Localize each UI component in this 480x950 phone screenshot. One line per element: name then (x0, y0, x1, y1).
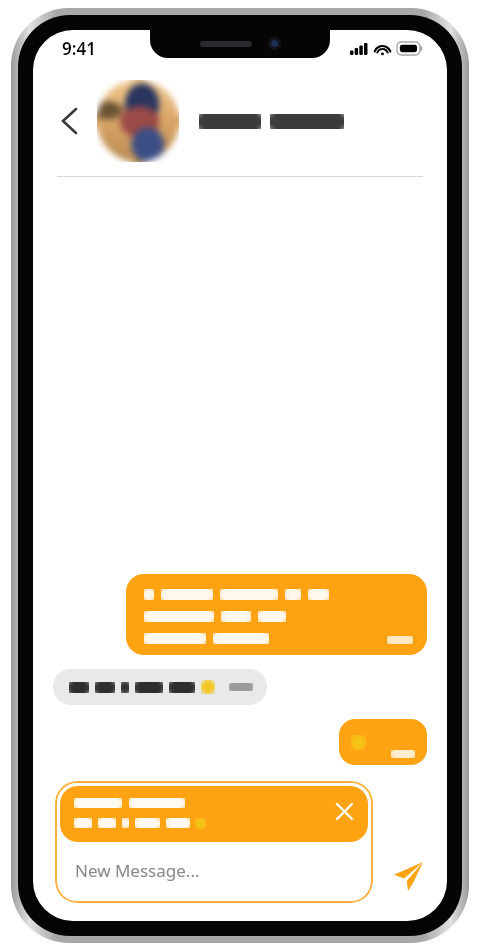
staticText: 9:41 (62, 37, 96, 60)
button[interactable] (126, 574, 427, 655)
staticText: New Message... (75, 859, 200, 882)
button[interactable]: Profile photo (97, 80, 179, 162)
button[interactable]: New Message... (60, 842, 368, 898)
button[interactable] (339, 719, 427, 765)
button[interactable]: Cancel reply (330, 797, 358, 825)
button[interactable] (53, 669, 267, 705)
button[interactable]: Back (47, 99, 91, 143)
button[interactable]: Send (381, 849, 435, 903)
button[interactable]: Cancel reply (60, 786, 368, 842)
